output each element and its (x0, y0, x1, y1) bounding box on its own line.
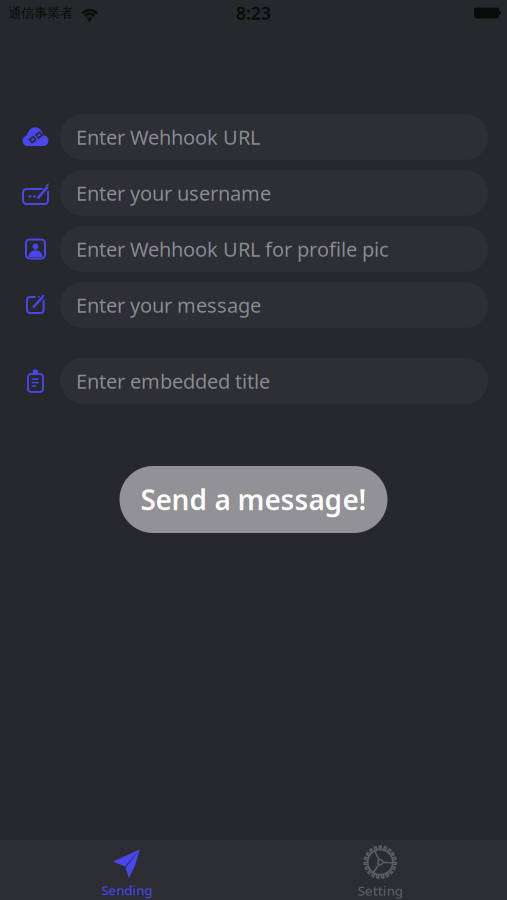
staticText: 通信事業者 (8, 5, 73, 21)
staticText: Enter your message (76, 292, 261, 318)
button[interactable]: Enter embedded title (60, 358, 488, 404)
button[interactable]: Enter your message (60, 282, 488, 328)
button[interactable]: Enter your username (60, 170, 488, 216)
staticText: Setting (358, 882, 403, 899)
staticText: Enter your username (76, 180, 271, 206)
button[interactable]: Setting (253, 840, 507, 900)
staticText: Enter embedded title (76, 368, 270, 394)
staticText: Enter Wehhook URL for profile pic (76, 236, 389, 262)
staticText: 8:23 (236, 1, 271, 24)
button[interactable]: Enter Wehhook URL for profile pic (60, 226, 488, 272)
button[interactable]: Sending (0, 840, 253, 900)
button[interactable]: Enter Wehhook URL (60, 114, 488, 160)
staticText: Sending (101, 881, 152, 899)
staticText: Send a message! (140, 481, 366, 518)
staticText: Enter Wehhook URL (76, 124, 260, 150)
button[interactable]: Send a message! (119, 466, 387, 533)
